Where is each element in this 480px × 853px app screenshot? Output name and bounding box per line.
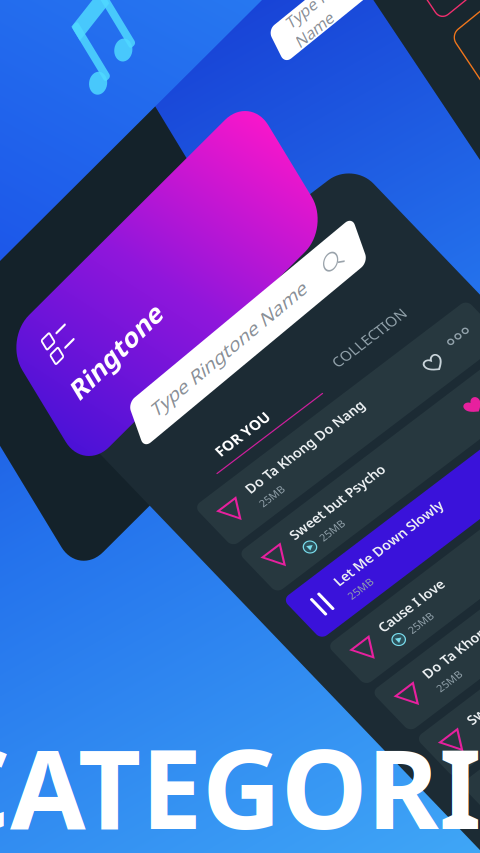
- button[interactable]: FOR YOU: [40, 74, 370, 132]
- button[interactable]: Let Me Down Slowly: [52, 510, 480, 602]
- button[interactable]: Do Ta Khong Do Nang: [52, 722, 480, 814]
- button[interactable]: Sweet but Psycho: [52, 404, 480, 496]
- staticText: Sweet but Psycho: [134, 420, 325, 450]
- button[interactable]: Top Download: [66, 168, 366, 278]
- button[interactable]: Do Ta Khong Do Nang: [52, 298, 480, 390]
- button[interactable]: Cause I love: [52, 616, 480, 708]
- staticText: New Ringtone: [93, 472, 339, 518]
- staticText: Type Ringtone Name: [30, 0, 194, 60]
- staticText: FOR YOU: [40, 74, 175, 116]
- button[interactable]: FOR YOU: [117, 234, 338, 278]
- button[interactable]: Type Ringtone Name: [0, 0, 320, 56]
- staticText: COLLECTION: [384, 234, 480, 266]
- button[interactable]: New Ringtone: [66, 440, 366, 550]
- button[interactable]: Type Ringtone Name: [0, 0, 400, 70]
- staticText: Do Ta Khong Do Nang: [134, 314, 374, 344]
- button[interactable]: Hot Ringtone: [66, 304, 366, 414]
- staticText: Do Ta Khong Do Nang: [134, 738, 374, 768]
- staticText: 25MB: [134, 774, 181, 797]
- staticText: FOR YOU: [141, 234, 247, 266]
- button[interactable]: COLLECTION: [384, 234, 480, 278]
- button[interactable]: Sweet but Psycho: [52, 828, 480, 853]
- staticText: 25MB: [134, 350, 181, 373]
- staticText: Let Me Down Slowly: [134, 526, 353, 556]
- staticText: Hot Ringtone: [100, 336, 332, 382]
- staticText: Type Ringtone Name: [30, 16, 303, 54]
- staticText: CATEGORIES: [0, 714, 480, 853]
- staticText: Top Download: [93, 200, 338, 246]
- staticText: Ringtone: [44, 97, 208, 145]
